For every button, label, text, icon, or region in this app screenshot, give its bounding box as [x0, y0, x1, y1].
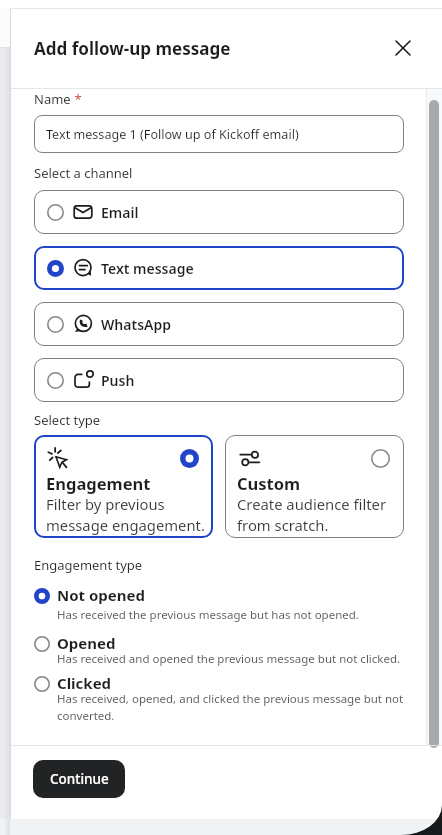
- staticText: Text message: [101, 259, 194, 278]
- button[interactable]: [389, 34, 417, 62]
- button[interactable]: Text message 1 (Follow up of Kickoff ema…: [34, 115, 404, 153]
- staticText: Custom: [237, 472, 301, 494]
- button[interactable]: Clicked: [34, 673, 381, 707]
- staticText: Push: [101, 371, 135, 390]
- staticText: Select type: [34, 411, 101, 429]
- staticText: Not opened: [57, 585, 145, 605]
- button[interactable]: Engagement: [34, 435, 213, 538]
- staticText: Email: [101, 203, 139, 222]
- staticText: Filter by previous: [46, 494, 165, 514]
- staticText: from scratch.: [237, 515, 329, 535]
- staticText: Has received the previous message but ha…: [57, 607, 359, 623]
- staticText: message engagement.: [46, 515, 205, 535]
- button[interactable]: Email: [34, 190, 404, 234]
- button[interactable]: Text message: [34, 246, 404, 290]
- staticText: Add follow-up message: [34, 37, 231, 60]
- button[interactable]: Custom: [225, 435, 404, 538]
- staticText: Create audience filter: [237, 494, 387, 514]
- button[interactable]: Continue: [33, 760, 125, 798]
- button[interactable]: Opened: [34, 633, 378, 653]
- staticText: Has received, opened, and clicked the pr…: [57, 691, 404, 707]
- staticText: Engagement: [46, 472, 151, 494]
- staticText: Clicked: [57, 673, 112, 693]
- staticText: converted.: [57, 708, 115, 724]
- staticText: Select a channel: [34, 164, 133, 182]
- button[interactable]: WhatsApp: [34, 302, 404, 346]
- staticText: WhatsApp: [101, 315, 171, 334]
- staticText: Name: [34, 90, 71, 108]
- staticText: Engagement type: [34, 556, 143, 574]
- staticText: Opened: [57, 633, 116, 653]
- button[interactable]: Not opened: [34, 585, 336, 605]
- staticText: Continue: [50, 770, 109, 788]
- staticText: Has received and opened the previous mes…: [57, 651, 401, 667]
- staticText: Text message 1 (Follow up of Kickoff ema…: [46, 126, 299, 143]
- staticText: *: [71, 90, 82, 108]
- button[interactable]: Push: [34, 358, 404, 402]
